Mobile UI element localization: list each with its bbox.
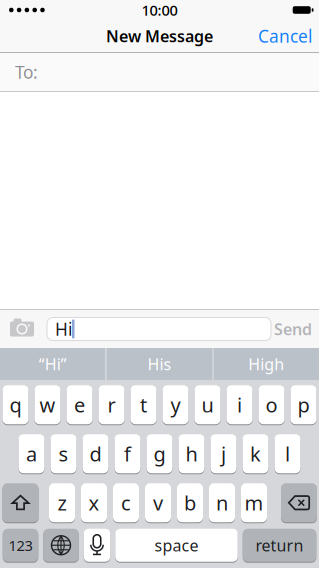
button[interactable]: p — [290, 385, 316, 424]
staticText: s — [58, 440, 68, 467]
button[interactable]: c — [113, 483, 139, 522]
staticText: o — [265, 391, 277, 418]
button[interactable]: u — [194, 385, 220, 424]
staticText: a — [26, 440, 37, 467]
staticText: d — [89, 440, 101, 467]
button[interactable]: t — [130, 385, 156, 424]
button[interactable]: q — [2, 385, 28, 424]
button[interactable]: k — [242, 434, 268, 473]
button[interactable]: a — [18, 434, 44, 473]
staticText: y — [170, 391, 180, 418]
staticText: c — [121, 489, 131, 516]
staticText: His — [147, 353, 171, 375]
staticText: p — [297, 391, 309, 418]
button[interactable]: f — [114, 434, 140, 473]
button[interactable]: n — [209, 483, 235, 522]
button[interactable]: j — [210, 434, 236, 473]
staticText: g — [153, 440, 165, 467]
button[interactable]: r — [98, 385, 124, 424]
staticText: “Hi” — [39, 353, 67, 375]
button[interactable]: z — [49, 483, 75, 522]
button[interactable]: “Hi” — [0, 348, 105, 380]
staticText: return — [255, 535, 303, 556]
button[interactable]: x — [81, 483, 107, 522]
button[interactable]: b — [177, 483, 203, 522]
button[interactable]: Dictate — [84, 529, 110, 562]
staticText: New Message — [106, 25, 213, 47]
staticText: 10:00 — [141, 0, 177, 20]
button[interactable]: e — [66, 385, 92, 424]
button[interactable]: Next keyboard — [43, 529, 79, 562]
staticText: r — [107, 391, 115, 418]
staticText: space — [154, 535, 198, 556]
staticText: z — [57, 489, 66, 516]
button[interactable]: v — [145, 483, 171, 522]
button[interactable]: i — [226, 385, 252, 424]
button[interactable]: y — [162, 385, 188, 424]
staticText: 123 — [8, 535, 32, 555]
button[interactable]: m — [241, 483, 267, 522]
staticText: l — [285, 440, 290, 467]
button[interactable]: High — [213, 348, 319, 380]
button[interactable]: o — [258, 385, 284, 424]
button[interactable]: space — [115, 529, 238, 562]
button[interactable]: Numbers — [3, 529, 38, 562]
button[interactable]: Cancel — [258, 24, 319, 47]
button[interactable]: Camera — [0, 320, 34, 338]
staticText: To: — [15, 60, 38, 83]
button[interactable]: Shift — [2, 483, 38, 522]
staticText: High — [248, 353, 284, 375]
staticText: e — [74, 391, 85, 418]
staticText: w — [39, 391, 55, 418]
button[interactable]: g — [146, 434, 172, 473]
button[interactable]: return — [243, 529, 316, 562]
button[interactable]: s — [50, 434, 76, 473]
button[interactable]: His — [107, 348, 212, 380]
staticText: v — [153, 489, 163, 516]
button[interactable]: d — [82, 434, 108, 473]
staticText: j — [221, 440, 226, 467]
staticText: b — [184, 489, 196, 516]
button[interactable]: Send — [274, 318, 319, 340]
staticText: q — [9, 391, 21, 418]
staticText: f — [124, 440, 131, 467]
staticText: Send — [274, 318, 312, 340]
button[interactable]: Delete — [281, 483, 317, 522]
staticText: n — [216, 489, 228, 516]
staticText: k — [250, 440, 261, 467]
button[interactable]: h — [178, 434, 204, 473]
button[interactable]: l — [274, 434, 300, 473]
staticText: u — [201, 391, 213, 418]
staticText: h — [185, 440, 197, 467]
staticText: Cancel — [258, 24, 312, 47]
staticText: t — [140, 391, 147, 418]
staticText: Hi — [55, 317, 72, 340]
staticText: m — [244, 489, 263, 516]
staticText: i — [237, 391, 242, 418]
button[interactable]: w — [34, 385, 60, 424]
staticText: x — [88, 489, 99, 516]
